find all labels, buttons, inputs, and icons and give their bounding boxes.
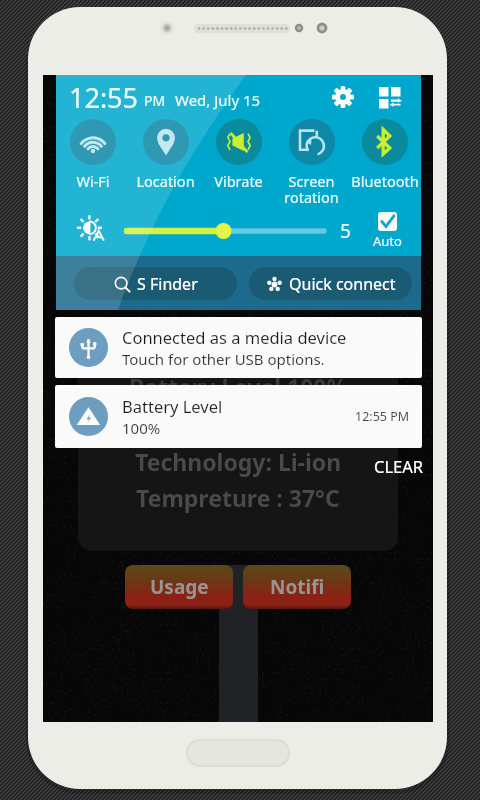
staticText: Technology: Li-ion <box>135 446 342 477</box>
staticText: Touch for other USB options. <box>122 349 325 369</box>
staticText: Battery Level 100% <box>129 371 348 402</box>
staticText: Bluetooth <box>351 171 419 191</box>
staticText: Connected as a media device <box>122 326 347 348</box>
staticText: 12:55 PM <box>355 408 410 425</box>
staticText: Wi-Fi <box>76 171 110 191</box>
staticText: Notifi <box>270 574 325 600</box>
staticText: CLEAR <box>374 455 424 477</box>
button[interactable]: Settings <box>331 85 355 109</box>
button[interactable]: CLEAR <box>360 449 433 483</box>
button[interactable]: Vibrate <box>202 119 275 206</box>
button[interactable]: Usage <box>125 565 233 609</box>
staticText: 12:55 <box>69 79 139 116</box>
button[interactable]: Notifi <box>243 565 351 609</box>
staticText: Tempreture : 37°C <box>136 482 340 513</box>
button[interactable]: Edit quick settings <box>379 85 404 110</box>
staticText: Quick connect <box>289 273 396 295</box>
staticText: Battery Level <box>122 395 223 417</box>
button[interactable]: Bluetooth <box>348 119 421 206</box>
staticText: PM <box>144 91 166 110</box>
button[interactable]: Connected as a media device <box>55 317 422 378</box>
staticText: Location <box>136 171 195 191</box>
button[interactable]: S Finder <box>74 267 237 300</box>
button[interactable]: Quick connect <box>249 267 412 300</box>
staticText: Screen rotation <box>284 171 339 206</box>
staticText: Auto <box>373 232 402 250</box>
button[interactable]: Wi-Fi <box>56 119 129 206</box>
button[interactable]: Auto brightness <box>76 215 108 247</box>
staticText: S Finder <box>137 273 198 295</box>
button[interactable]: Auto <box>367 212 407 250</box>
staticText: Usage <box>150 574 209 600</box>
staticText: Wed, July 15 <box>175 90 261 110</box>
button[interactable]: Screen rotation <box>275 119 348 206</box>
button[interactable]: Brightness slider <box>125 221 326 241</box>
staticText: 5 <box>340 218 351 244</box>
staticText: Vibrate <box>214 171 263 191</box>
staticText: 100% <box>122 418 161 438</box>
button[interactable]: Location <box>129 119 202 206</box>
button[interactable]: Battery Level <box>55 385 422 448</box>
